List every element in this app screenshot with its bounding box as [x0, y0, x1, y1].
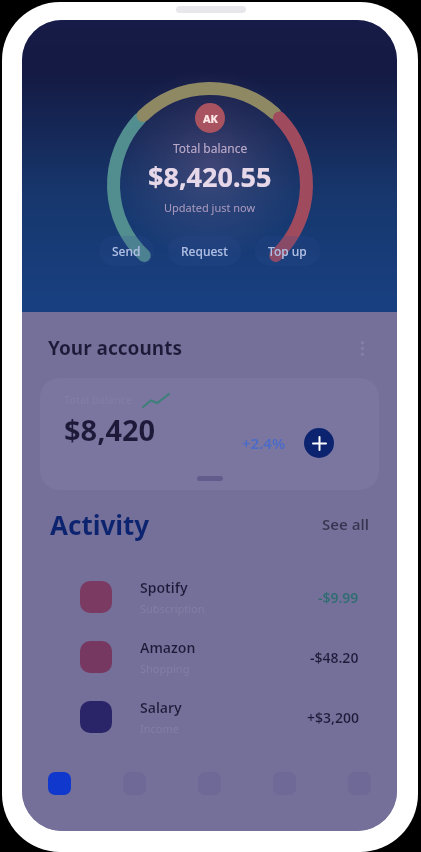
staticText: $8,420 — [64, 410, 156, 449]
button[interactable]: Top up — [255, 236, 320, 266]
staticText: Spotify — [140, 578, 188, 597]
staticText: Subscription — [140, 601, 205, 616]
button[interactable]: Send — [99, 236, 154, 266]
staticText: Send — [112, 243, 141, 259]
staticText: AK — [203, 111, 218, 126]
button[interactable]: Spotify — [22, 567, 397, 627]
button[interactable]: Request — [168, 236, 241, 266]
staticText: Total balance — [173, 140, 248, 156]
button[interactable]: Salary — [22, 687, 397, 747]
staticText: Salary — [140, 698, 182, 717]
staticText: +$3,200 — [307, 708, 359, 727]
staticText: Top up — [268, 243, 307, 259]
staticText: $8,420.55 — [148, 158, 272, 195]
staticText: Shopping — [140, 661, 190, 676]
button[interactable]: Amazon — [22, 627, 397, 687]
staticText: See all — [322, 514, 369, 534]
staticText: +2.4% — [242, 433, 286, 453]
button[interactable]: Tab 1 — [22, 759, 97, 807]
staticText: Your accounts — [48, 335, 182, 361]
staticText: Updated just now — [164, 200, 256, 215]
staticText: Amazon — [140, 638, 196, 657]
button[interactable]: Total balance — [40, 378, 379, 490]
staticText: Request — [181, 243, 228, 259]
button[interactable]: Tab 5 — [322, 759, 397, 807]
staticText: Activity — [50, 507, 150, 542]
staticText: -$9.99 — [318, 588, 359, 607]
button[interactable]: Add account — [304, 428, 334, 458]
button[interactable]: See all — [322, 514, 369, 534]
staticText: Income — [140, 721, 179, 736]
staticText: -$48.20 — [310, 648, 359, 667]
